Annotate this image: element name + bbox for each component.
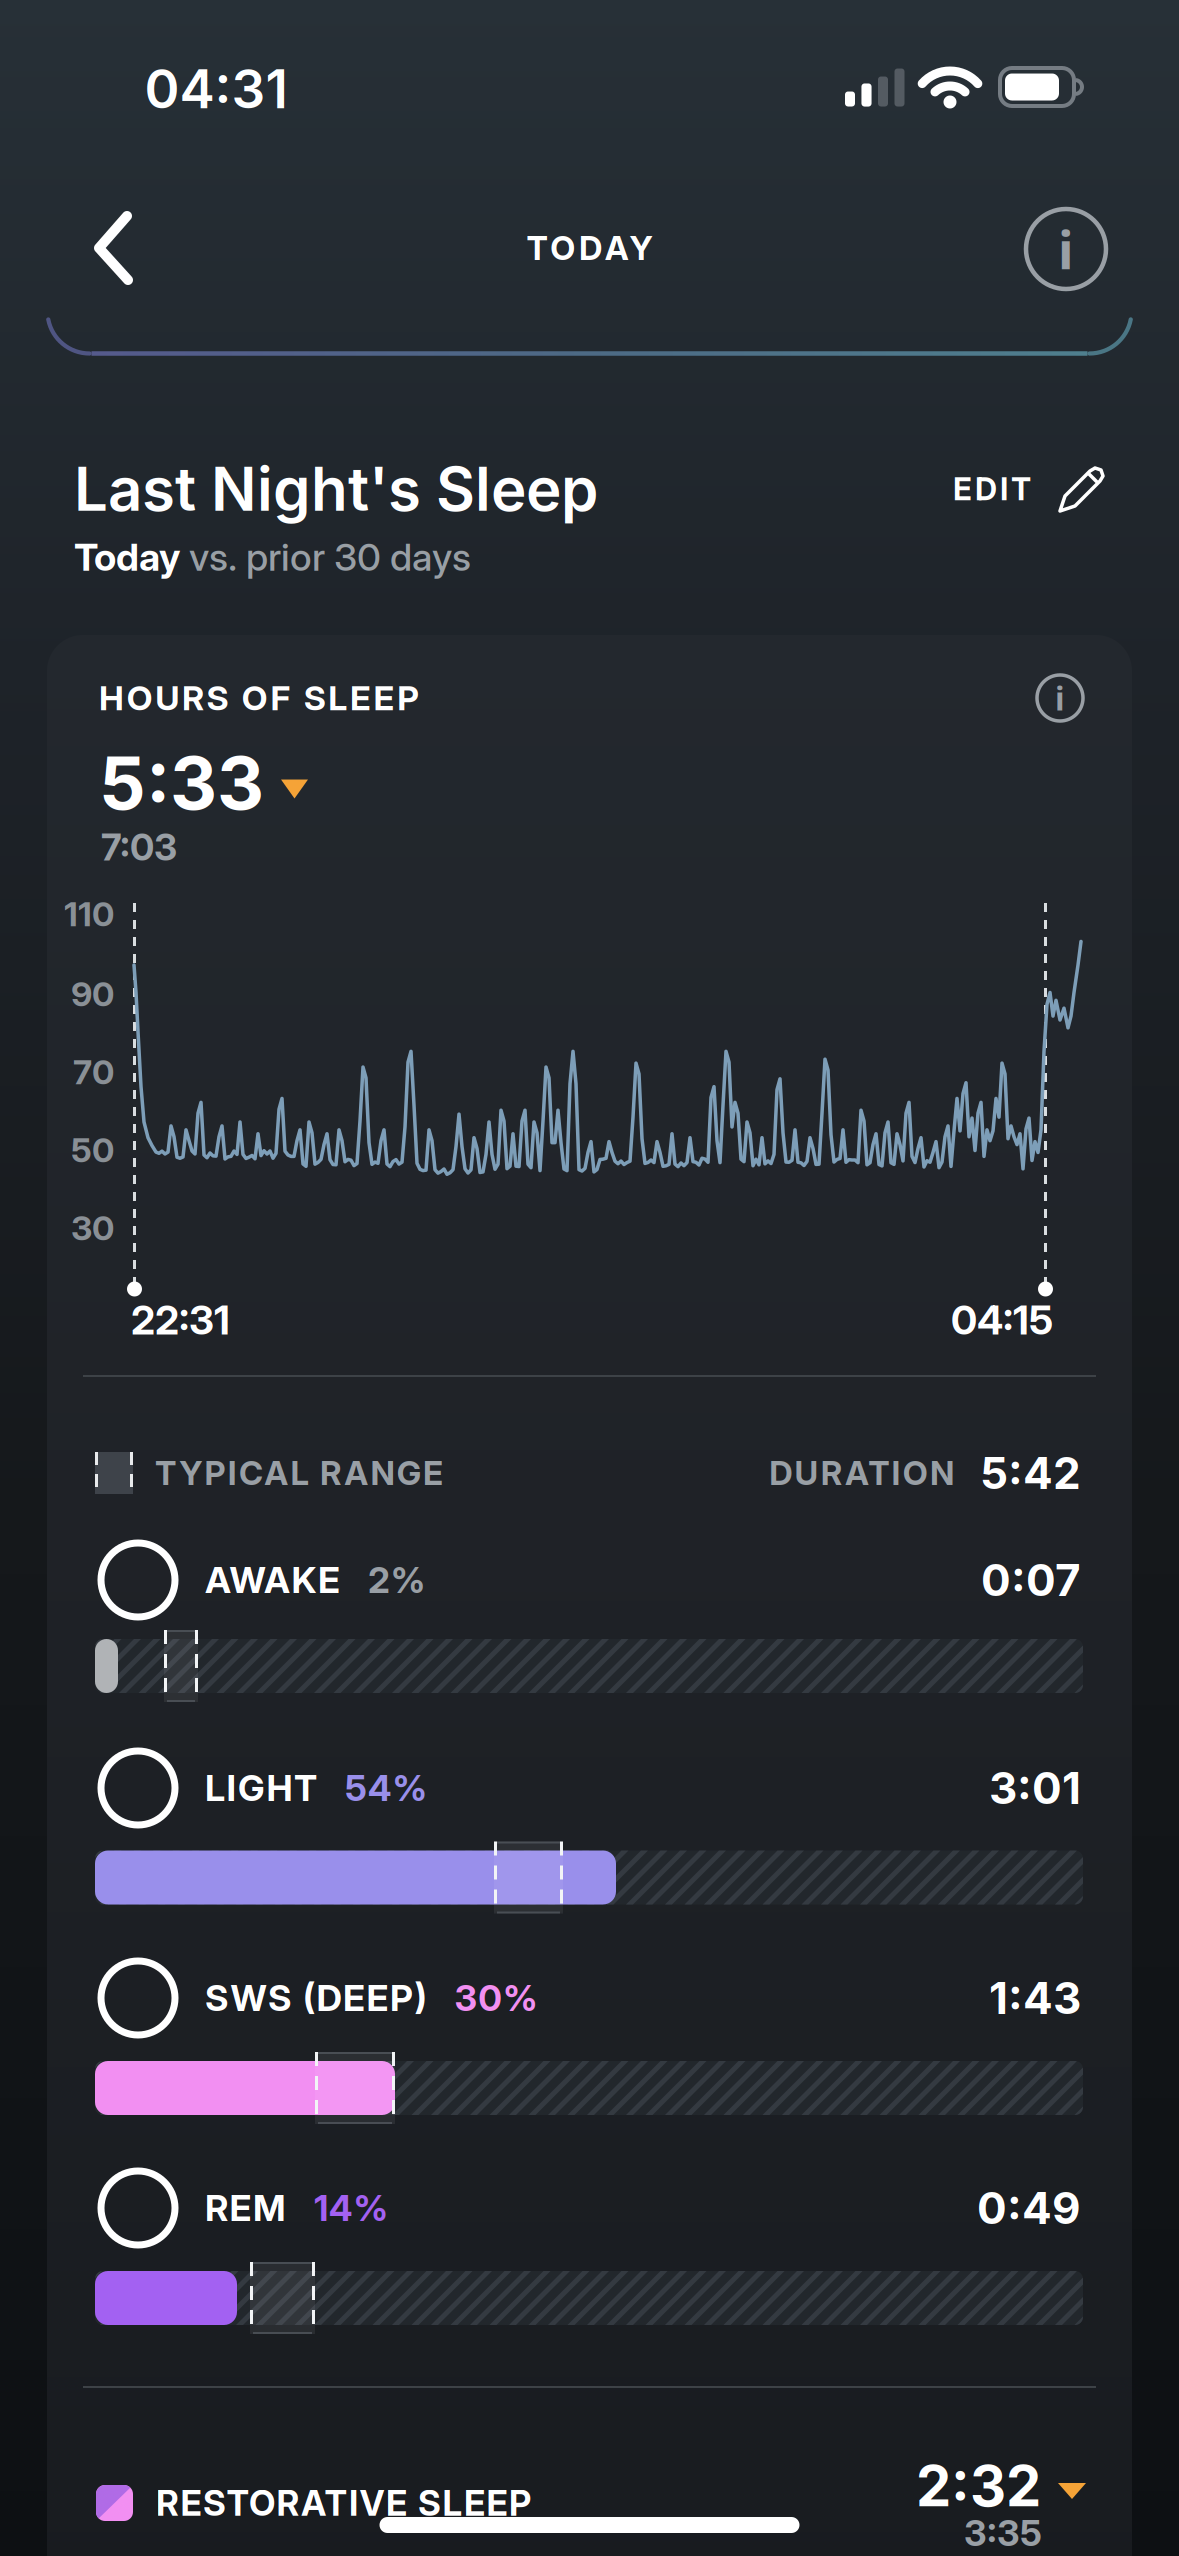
staticText: 50: [71, 1129, 114, 1170]
staticText: 54%: [345, 1766, 427, 1810]
staticText: 5:33: [99, 739, 264, 827]
staticText: RESTORATIVE SLEEP: [156, 2482, 531, 2524]
staticText: Last Night's Sleep: [74, 453, 598, 525]
button[interactable]: Restorative sleep details: [916, 2452, 1086, 2520]
button[interactable]: Hours of sleep details: [99, 739, 308, 827]
staticText: i: [1055, 676, 1065, 720]
staticText: REM: [205, 2186, 286, 2230]
staticText: 04:15: [951, 1296, 1053, 1344]
staticText: vs. prior 30 days: [180, 534, 471, 580]
staticText: 1:43: [989, 1971, 1081, 2025]
button[interactable]: Info: [1021, 204, 1111, 294]
staticText: Today: [74, 534, 180, 580]
staticText: 22:31: [131, 1296, 230, 1344]
staticText: DURATION: [769, 1453, 954, 1493]
staticText: 2:32: [916, 2452, 1041, 2520]
button[interactable]: Edit: [953, 464, 1107, 514]
staticText: i: [1058, 214, 1074, 284]
staticText: 7:03: [101, 825, 177, 869]
staticText: 0:49: [977, 2181, 1081, 2235]
staticText: 5:42: [980, 1446, 1081, 1500]
staticText: 30%: [454, 1976, 538, 2020]
staticText: 30: [71, 1207, 114, 1248]
staticText: 14%: [314, 2186, 388, 2230]
staticText: TYPICAL RANGE: [155, 1453, 443, 1493]
button[interactable]: Back: [98, 209, 132, 287]
staticText: 3:35: [964, 2511, 1042, 2555]
staticText: TODAY: [526, 228, 652, 268]
staticText: SWS (DEEP): [205, 1976, 426, 2020]
staticText: 04:31: [144, 57, 287, 121]
staticText: EDIT: [953, 470, 1031, 508]
staticText: HOURS OF SLEEP: [99, 677, 419, 718]
staticText: 70: [73, 1051, 114, 1092]
staticText: 3:01: [989, 1761, 1081, 1815]
button[interactable]: Info: [1032, 670, 1088, 726]
staticText: 90: [71, 973, 114, 1014]
staticText: LIGHT: [205, 1766, 317, 1810]
staticText: 0:07: [981, 1553, 1081, 1607]
staticText: 2%: [368, 1558, 426, 1602]
staticText: 110: [64, 893, 114, 934]
staticText: AWAKE: [205, 1558, 340, 1602]
